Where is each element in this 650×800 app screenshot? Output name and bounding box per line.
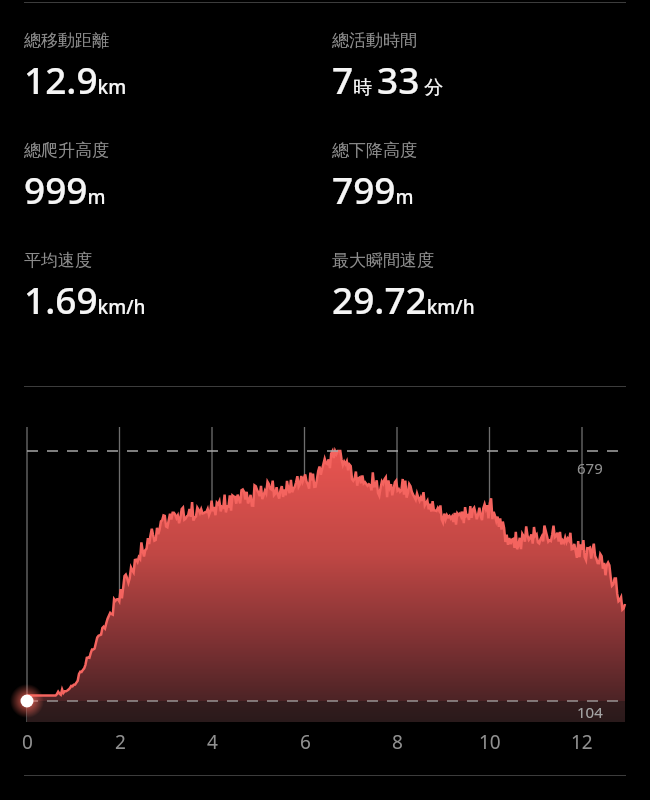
staticText: 999m	[24, 164, 106, 214]
button[interactable]: 總爬升高度	[24, 140, 109, 214]
staticText: 總下降高度	[332, 140, 417, 161]
staticText: 0	[22, 729, 33, 755]
button[interactable]: 最大瞬間速度	[332, 250, 475, 324]
button[interactable]: 總下降高度	[332, 140, 417, 214]
staticText: 29.72km/h	[332, 274, 475, 324]
button[interactable]: 總活動時間	[332, 30, 444, 104]
staticText: 總移動距離	[24, 30, 109, 51]
staticText: 679	[577, 458, 603, 478]
staticText: 總活動時間	[332, 30, 417, 51]
button[interactable]: Elevation profile chart	[0, 0, 650, 800]
staticText: 2	[115, 729, 126, 755]
staticText: 10	[479, 729, 501, 755]
button[interactable]: 總移動距離	[24, 30, 127, 104]
staticText: 平均速度	[24, 250, 92, 271]
staticText: 12.9km	[24, 54, 127, 104]
staticText: 6	[300, 729, 311, 755]
staticText: 104	[577, 702, 603, 722]
staticText: 8	[392, 729, 403, 755]
staticText: 7時 33 分	[332, 54, 444, 104]
staticText: 1.69km/h	[24, 274, 146, 324]
staticText: 12	[571, 729, 593, 755]
staticText: 799m	[332, 164, 414, 214]
button[interactable]: 平均速度	[24, 250, 146, 324]
staticText: 總爬升高度	[24, 140, 109, 161]
staticText: 最大瞬間速度	[332, 250, 434, 271]
staticText: 4	[207, 729, 218, 755]
